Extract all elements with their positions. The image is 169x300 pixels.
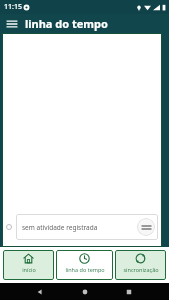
button[interactable]: sincronização xyxy=(115,250,166,280)
staticText: sem atividade registrada xyxy=(22,223,98,232)
staticText: início xyxy=(22,266,36,273)
button[interactable]: linha do tempo xyxy=(56,250,113,280)
button[interactable]: sem atividade registrada xyxy=(16,214,158,240)
button[interactable]: Opções xyxy=(137,218,155,236)
staticText: 11:15 xyxy=(4,2,22,12)
staticText: linha do tempo xyxy=(25,16,108,31)
staticText: linha do tempo xyxy=(65,266,105,273)
button[interactable]: início xyxy=(3,250,54,280)
button[interactable]: Menu xyxy=(5,17,19,31)
staticText: sincronização xyxy=(123,266,159,273)
